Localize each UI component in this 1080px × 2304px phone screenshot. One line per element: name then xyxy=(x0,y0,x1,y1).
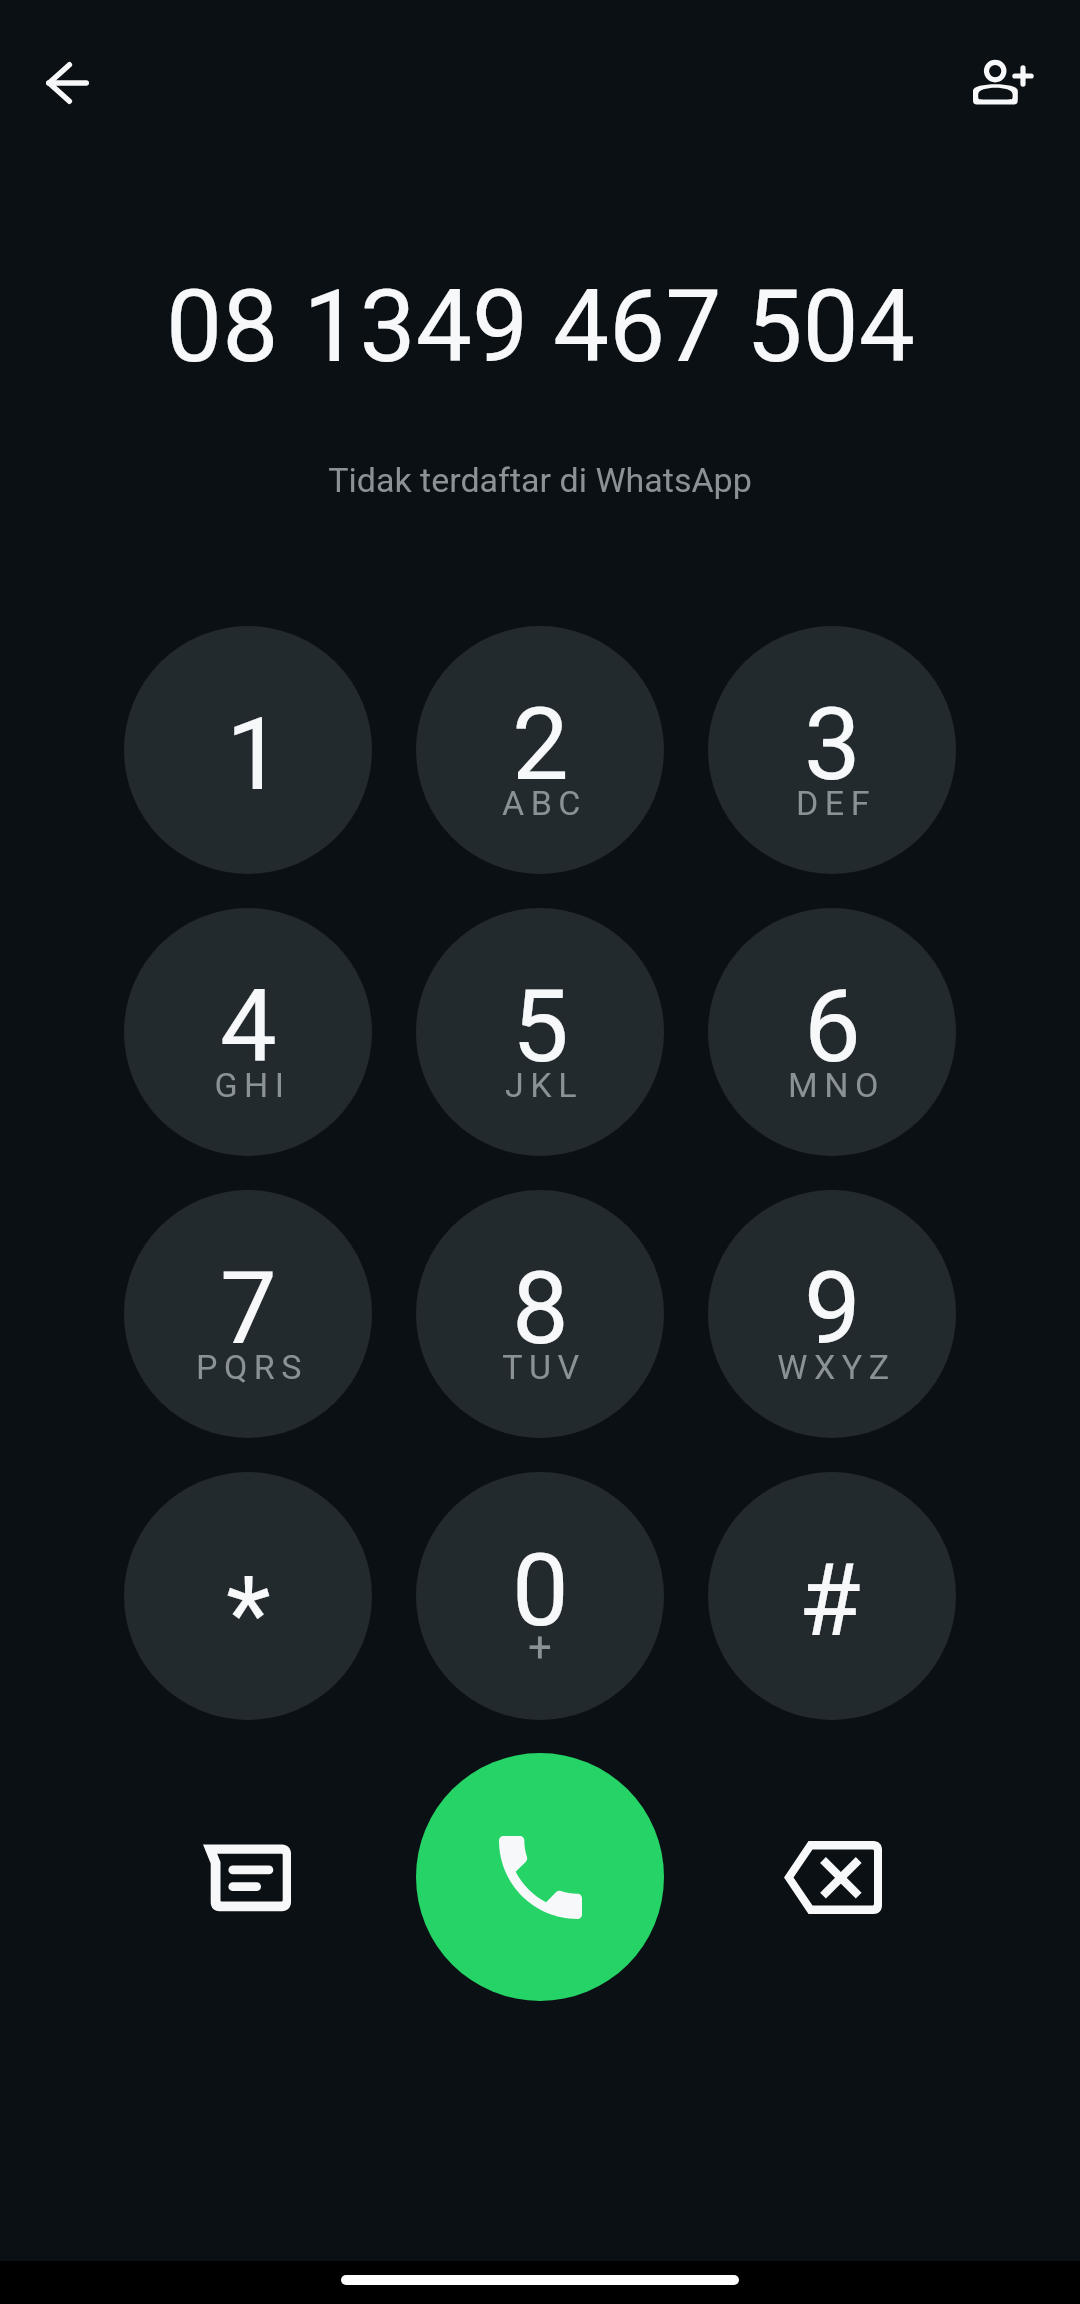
button[interactable]: # xyxy=(708,1472,956,1720)
staticText: 8 xyxy=(512,1249,569,1367)
staticText: DEF xyxy=(796,783,876,823)
staticText: JKL xyxy=(505,1065,583,1105)
staticText: 0 xyxy=(512,1531,569,1649)
staticText: 3 xyxy=(804,685,861,803)
button[interactable]: Backspace xyxy=(743,1787,923,1967)
staticText: 5 xyxy=(512,967,569,1085)
button[interactable]: 8 xyxy=(416,1190,664,1438)
button[interactable]: 6 xyxy=(708,908,956,1156)
button[interactable]: 9 xyxy=(708,1190,956,1438)
button[interactable]: 7 xyxy=(124,1190,372,1438)
button[interactable]: 5 xyxy=(416,908,664,1156)
staticText: 2 xyxy=(512,685,569,803)
staticText: 9 xyxy=(804,1249,861,1367)
button[interactable]: Back xyxy=(22,38,112,128)
staticText: PQRS xyxy=(196,1347,308,1387)
staticText: 6 xyxy=(804,967,861,1085)
button[interactable]: 3 xyxy=(708,626,956,874)
staticText: WXYZ xyxy=(777,1347,896,1387)
staticText: * xyxy=(226,1554,271,1675)
button[interactable]: 2 xyxy=(416,626,664,874)
staticText: 4 xyxy=(220,967,277,1085)
button[interactable]: Send message xyxy=(157,1787,337,1967)
button[interactable]: 1 xyxy=(124,626,372,874)
button[interactable]: Add contact xyxy=(958,37,1048,127)
staticText: # xyxy=(798,1541,861,1659)
button[interactable]: * xyxy=(124,1472,372,1720)
staticText: GHI xyxy=(214,1065,291,1105)
button[interactable]: Call xyxy=(416,1753,664,2001)
staticText: + xyxy=(528,1623,552,1672)
staticText: Tidak terdaftar di WhatsApp xyxy=(328,460,752,500)
staticText: 1 xyxy=(226,695,283,813)
staticText: 08 1349 467 504 xyxy=(166,268,915,378)
staticText: 7 xyxy=(220,1249,277,1367)
staticText: ABC xyxy=(502,783,587,823)
button[interactable]: 4 xyxy=(124,908,372,1156)
button[interactable]: 0 xyxy=(416,1472,664,1720)
staticText: TUV xyxy=(502,1347,586,1387)
staticText: MNO xyxy=(788,1065,885,1105)
